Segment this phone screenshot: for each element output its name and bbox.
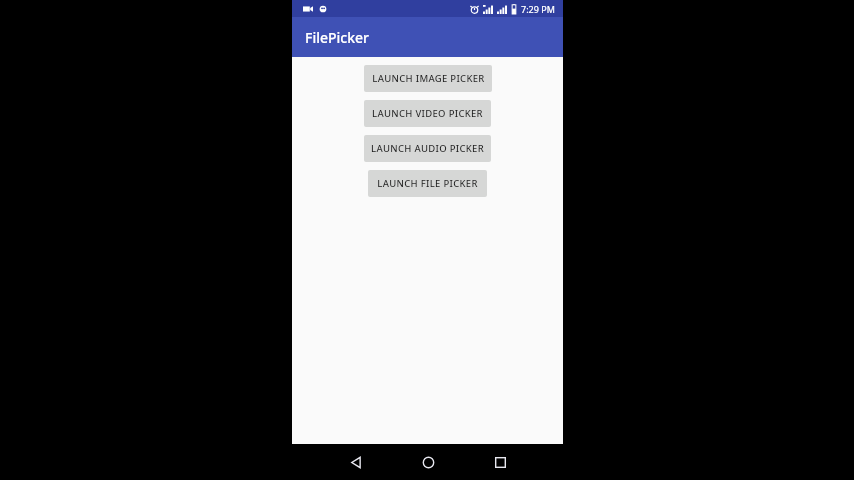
staticText: LAUNCH FILE PICKER <box>377 177 478 190</box>
button[interactable]: LAUNCH IMAGE PICKER <box>364 65 492 92</box>
button[interactable]: LAUNCH VIDEO PICKER <box>364 100 491 127</box>
button[interactable]: Back <box>320 444 392 480</box>
button[interactable]: Recent apps <box>464 444 536 480</box>
staticText: LAUNCH AUDIO PICKER <box>371 142 484 155</box>
staticText: LAUNCH IMAGE PICKER <box>372 72 485 85</box>
staticText: 7:29 PM <box>521 3 555 15</box>
staticText: LAUNCH VIDEO PICKER <box>372 107 483 120</box>
button[interactable]: LAUNCH FILE PICKER <box>368 170 487 197</box>
button[interactable]: Home <box>392 444 464 480</box>
button[interactable]: LAUNCH AUDIO PICKER <box>364 135 491 162</box>
staticText: FilePicker <box>305 28 369 47</box>
